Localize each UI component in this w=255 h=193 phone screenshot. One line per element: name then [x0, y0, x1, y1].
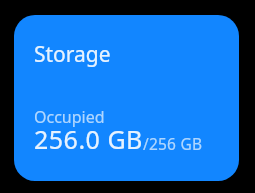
staticText: Storage — [34, 40, 111, 69]
staticText: Occupied — [34, 106, 105, 128]
staticText: /256 GB — [143, 133, 203, 154]
staticText: 256.0 GB — [34, 122, 143, 156]
button[interactable]: Storage — [14, 15, 239, 181]
